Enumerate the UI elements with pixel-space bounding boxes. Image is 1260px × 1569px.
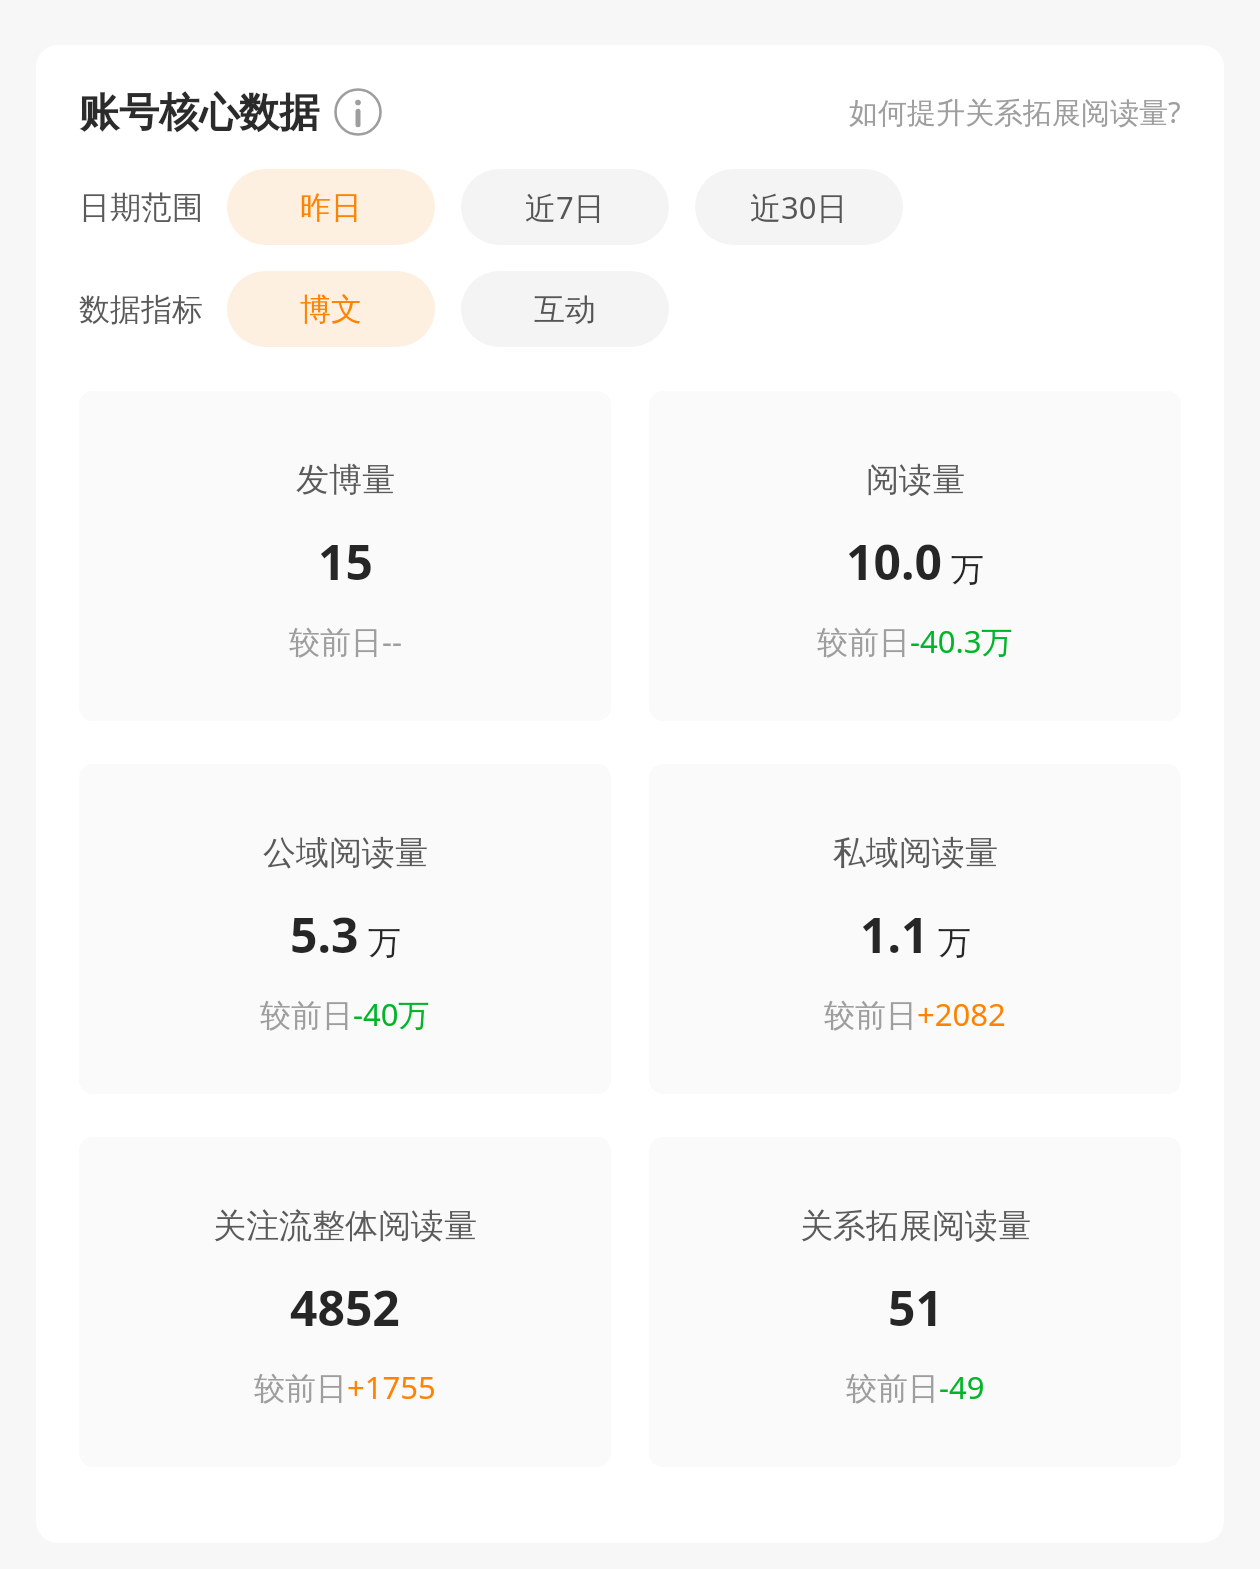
staticText: 私域阅读量 bbox=[833, 832, 998, 874]
staticText: 账号核心数据 bbox=[79, 87, 319, 137]
staticText: 较前日+1755 bbox=[254, 1366, 436, 1408]
staticText: 公域阅读量 bbox=[263, 832, 428, 874]
staticText: 10.0 bbox=[846, 529, 942, 594]
button[interactable]: 发博量 bbox=[79, 391, 611, 721]
staticText: 较前日-40万 bbox=[260, 993, 430, 1035]
button[interactable]: 公域阅读量 bbox=[79, 764, 611, 1094]
staticText: 数据指标 bbox=[79, 290, 203, 329]
staticText: 4852 bbox=[290, 1275, 400, 1340]
button[interactable]: 昨日 bbox=[227, 169, 435, 245]
staticText: 近7日 bbox=[525, 186, 605, 228]
staticText: 近30日 bbox=[750, 186, 848, 228]
staticText: 5.3 bbox=[290, 902, 359, 967]
staticText: 较前日-49 bbox=[846, 1366, 985, 1408]
staticText: 发博量 bbox=[296, 459, 395, 501]
button[interactable]: 关系拓展阅读量 bbox=[649, 1137, 1181, 1467]
staticText: 万 bbox=[368, 922, 401, 964]
staticText: 关注流整体阅读量 bbox=[213, 1205, 477, 1247]
staticText: 万 bbox=[951, 549, 984, 591]
staticText: 15 bbox=[318, 529, 373, 594]
button[interactable]: 互动 bbox=[461, 271, 669, 347]
staticText: 万 bbox=[938, 922, 971, 964]
staticText: 日期范围 bbox=[79, 188, 203, 227]
button[interactable]: 近7日 bbox=[461, 169, 669, 245]
button[interactable]: 私域阅读量 bbox=[649, 764, 1181, 1094]
staticText: 互动 bbox=[534, 290, 596, 329]
staticText: 较前日-- bbox=[289, 620, 402, 662]
staticText: 关系拓展阅读量 bbox=[800, 1205, 1031, 1247]
button[interactable]: Info bbox=[333, 87, 383, 137]
staticText: 较前日-40.3万 bbox=[817, 620, 1013, 662]
button[interactable]: 近30日 bbox=[695, 169, 903, 245]
staticText: 昨日 bbox=[300, 188, 362, 227]
button[interactable]: 博文 bbox=[227, 271, 435, 347]
staticText: 51 bbox=[888, 1275, 943, 1340]
staticText: 博文 bbox=[300, 290, 362, 329]
staticText: 1.1 bbox=[860, 902, 929, 967]
button[interactable]: 如何提升关系拓展阅读量? bbox=[849, 92, 1181, 132]
button[interactable]: 阅读量 bbox=[649, 391, 1181, 721]
staticText: 较前日+2082 bbox=[824, 993, 1006, 1035]
staticText: 阅读量 bbox=[866, 459, 965, 501]
button[interactable]: 关注流整体阅读量 bbox=[79, 1137, 611, 1467]
staticText: 如何提升关系拓展阅读量? bbox=[849, 92, 1181, 132]
